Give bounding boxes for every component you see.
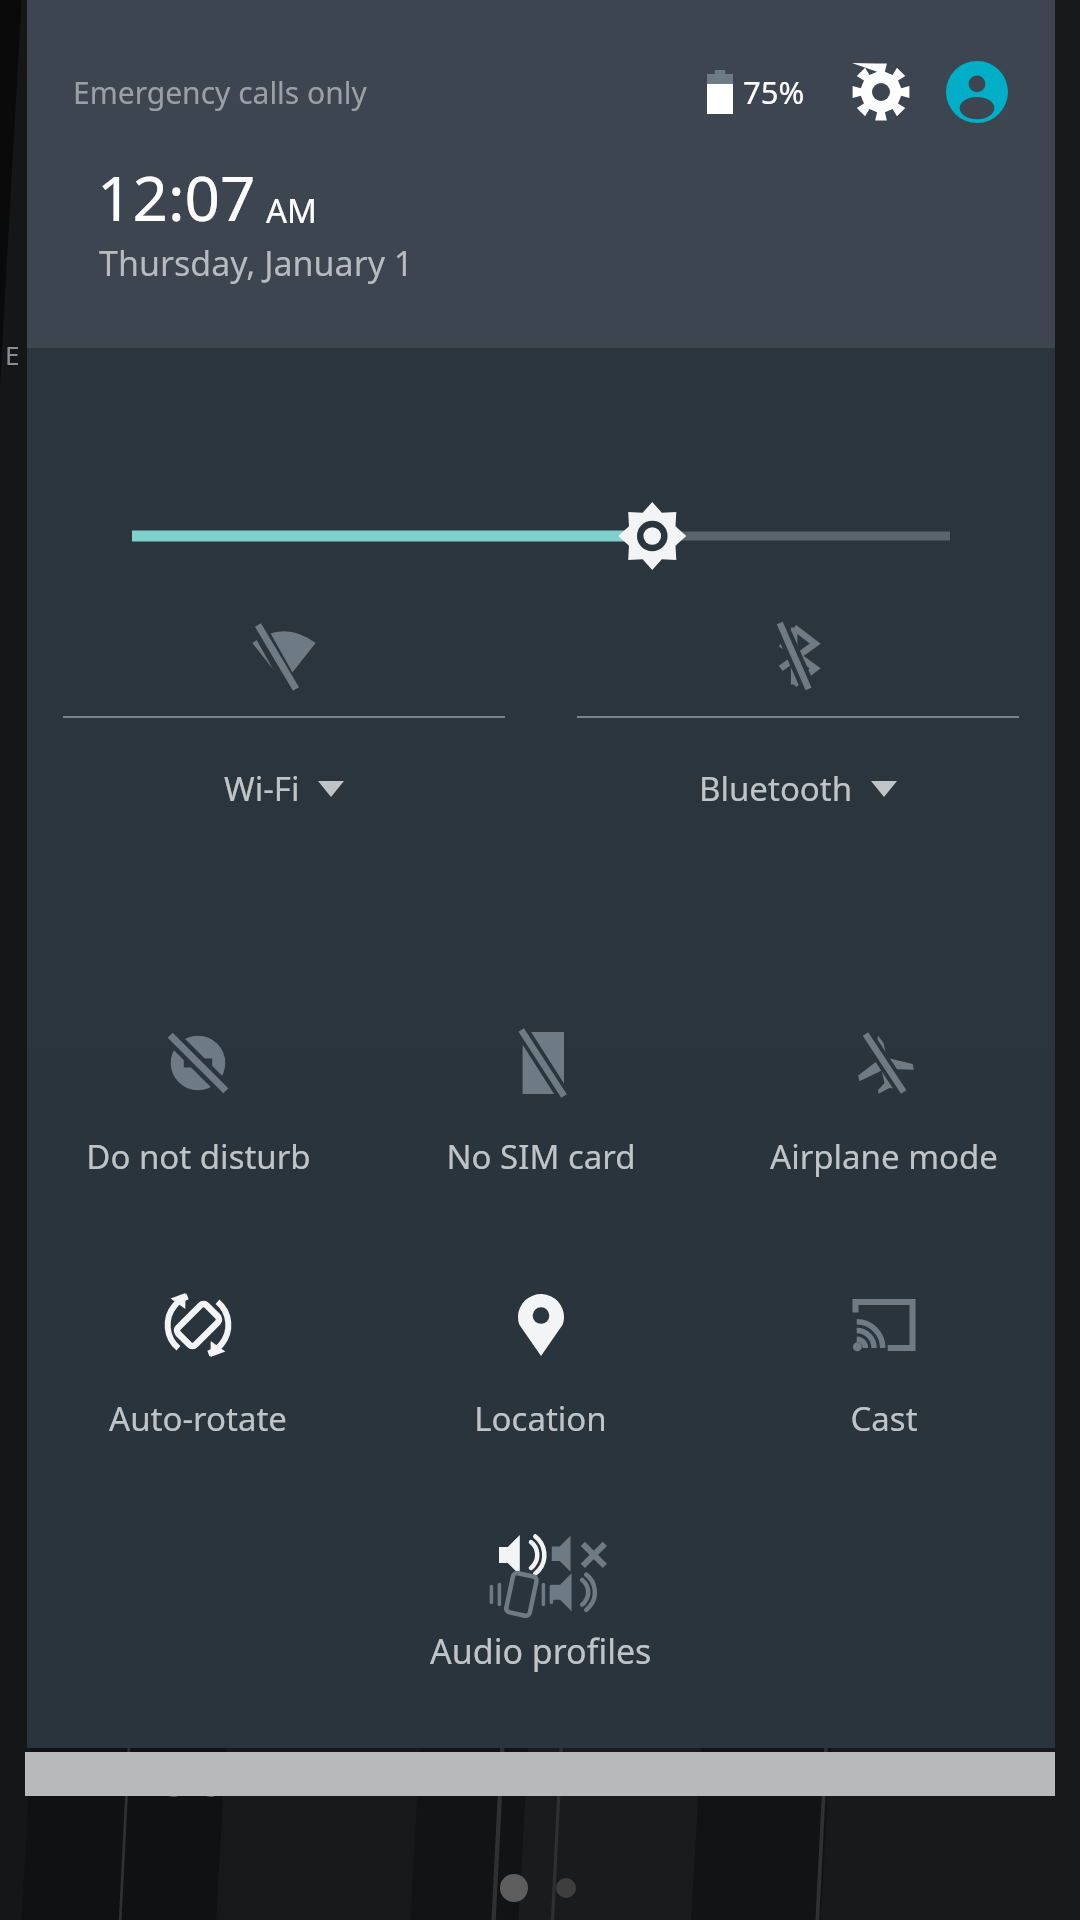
button[interactable]: User profile (945, 60, 1009, 124)
staticText: Wi-Fi (224, 766, 300, 811)
button[interactable]: Do not disturb (27, 1008, 369, 1179)
staticText: AM (266, 188, 318, 233)
staticText: Messaging (92, 1764, 220, 1798)
button[interactable]: Audio profiles (27, 1528, 1055, 1674)
button[interactable]: No SIM card (369, 1008, 712, 1179)
staticText: Bluetooth (699, 766, 853, 811)
staticText: Thursday, January 1 (99, 240, 414, 286)
staticText: Emergency calls only (73, 72, 367, 113)
staticText: Airplane mode (770, 1134, 998, 1179)
staticText: Pedometer (603, 1764, 734, 1798)
staticText: Location (474, 1396, 607, 1441)
staticText: Do not disturb (86, 1134, 311, 1179)
staticText: E (5, 337, 20, 372)
staticText: Cast (850, 1396, 918, 1441)
button[interactable]: Bluetooth (541, 596, 1055, 811)
staticText: Phone (886, 1764, 962, 1798)
staticText: 12:07 (97, 155, 256, 239)
button[interactable]: Wi-Fi (27, 596, 541, 811)
staticText: Music (378, 1764, 447, 1798)
button[interactable]: Auto-rotate (27, 1270, 369, 1441)
button[interactable]: Location (369, 1270, 712, 1441)
staticText: 75% (743, 71, 805, 113)
staticText: Auto-rotate (109, 1396, 287, 1441)
button[interactable]: Airplane mode (712, 1008, 1055, 1179)
staticText: Audio profiles (430, 1628, 652, 1674)
button[interactable]: Brightness (27, 486, 1055, 586)
staticText: No SIM card (446, 1134, 636, 1179)
button[interactable]: Settings (851, 62, 911, 122)
button[interactable]: Cast (712, 1270, 1055, 1441)
